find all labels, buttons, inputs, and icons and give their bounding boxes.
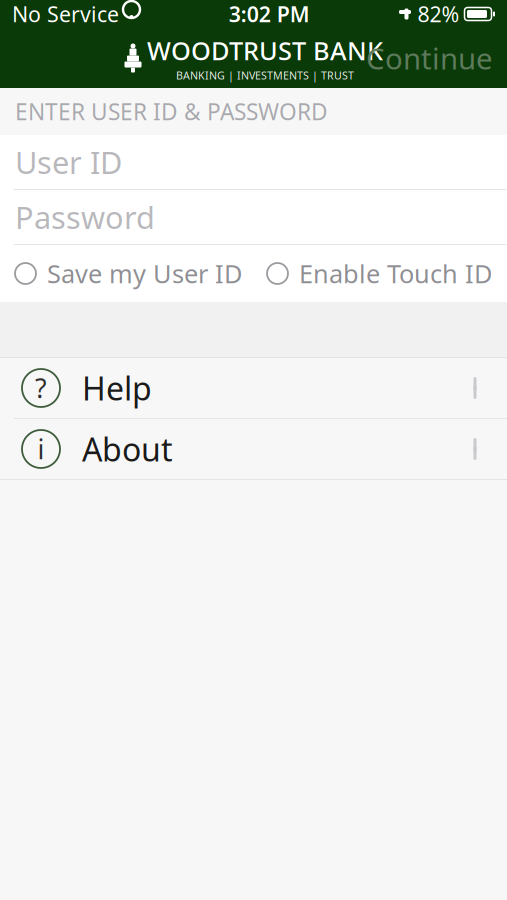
- staticText: User ID: [15, 142, 122, 182]
- button[interactable]: i: [0, 419, 507, 479]
- button[interactable]: ?: [0, 358, 507, 418]
- staticText: About: [82, 428, 173, 470]
- staticText: Help: [82, 367, 152, 409]
- staticText: No Service: [12, 0, 119, 28]
- staticText: Enable Touch ID: [299, 257, 492, 290]
- staticText: 3:02 PM: [229, 0, 310, 28]
- staticText: 82%: [417, 0, 459, 28]
- staticText: Continue: [366, 38, 493, 77]
- staticText: Save my User ID: [47, 257, 242, 290]
- staticText: ?: [35, 370, 47, 406]
- staticText: Password: [15, 197, 155, 237]
- staticText: ENTER USER ID & PASSWORD: [15, 96, 328, 126]
- button[interactable]: Enable Touch ID: [267, 243, 492, 304]
- staticText: [119, 5, 122, 23]
- staticText: WOODTRUST BANK: [147, 34, 383, 67]
- button[interactable]: Save my User ID: [15, 243, 242, 304]
- staticText: i: [37, 431, 44, 467]
- button[interactable]: Continue: [352, 28, 507, 87]
- staticText: BANKING | INVESTMENTS | TRUST: [176, 68, 354, 82]
